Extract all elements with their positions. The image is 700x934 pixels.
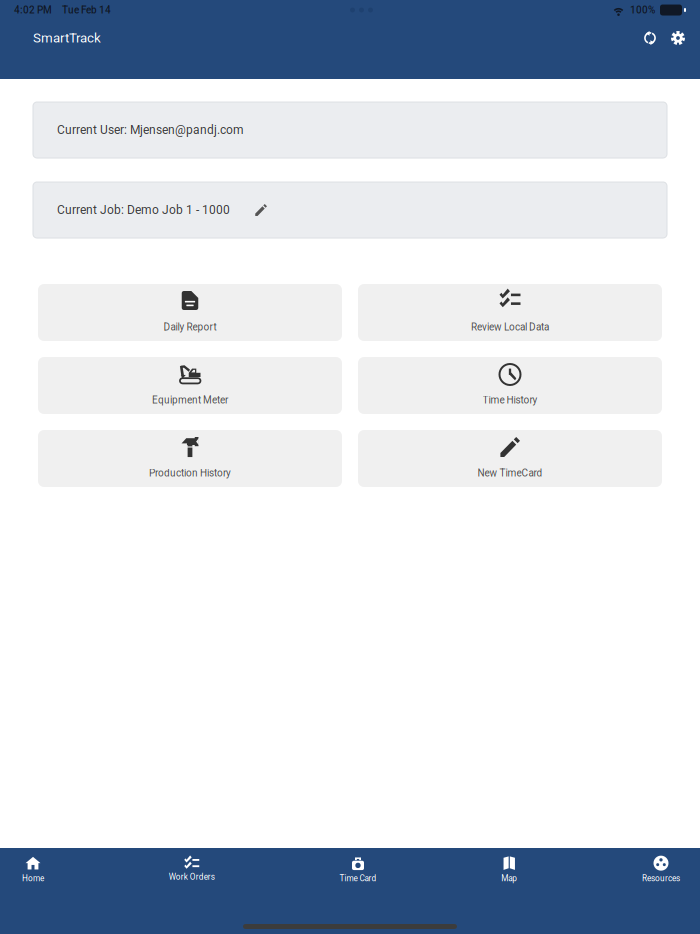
- staticText: Production History: [149, 467, 231, 479]
- staticText: Time History: [482, 394, 537, 406]
- staticText: New TimeCard: [477, 467, 542, 479]
- staticText: 4:02 PM: [14, 4, 52, 16]
- button[interactable]: Map: [501, 845, 517, 891]
- button[interactable]: New TimeCard: [358, 430, 662, 487]
- button[interactable]: Production History: [38, 430, 342, 487]
- staticText: Equipment Meter: [152, 394, 228, 406]
- staticText: Current Job: Demo Job 1 - 1000: [57, 203, 230, 217]
- button[interactable]: Time Card: [339, 845, 376, 891]
- staticText: Home: [22, 874, 44, 883]
- button[interactable]: Equipment Meter: [38, 357, 342, 414]
- button[interactable]: Home: [22, 845, 44, 891]
- staticText: Review Local Data: [471, 321, 549, 333]
- button[interactable]: Review Local Data: [358, 284, 662, 341]
- button[interactable]: Daily Report: [38, 284, 342, 341]
- staticText: Daily Report: [163, 321, 216, 333]
- staticText: Time Card: [339, 874, 376, 883]
- button[interactable]: Resources: [642, 845, 680, 891]
- staticText: Tue Feb 14: [62, 4, 111, 16]
- staticText: Work Orders: [169, 872, 215, 882]
- staticText: Current User: Mjensen@pandj.com: [57, 123, 244, 137]
- button[interactable]: Time History: [358, 357, 662, 414]
- staticText: Resources: [642, 874, 680, 883]
- button[interactable]: Sync: [636, 24, 664, 52]
- button[interactable]: Work Orders: [169, 846, 215, 890]
- button[interactable]: Current Job: Demo Job 1 - 1000: [33, 182, 667, 238]
- button[interactable]: Settings: [664, 24, 692, 52]
- staticText: SmartTrack: [33, 30, 101, 46]
- button[interactable]: Current User: Mjensen@pandj.com: [33, 102, 667, 158]
- staticText: 100%: [630, 4, 655, 16]
- staticText: Map: [501, 874, 517, 883]
